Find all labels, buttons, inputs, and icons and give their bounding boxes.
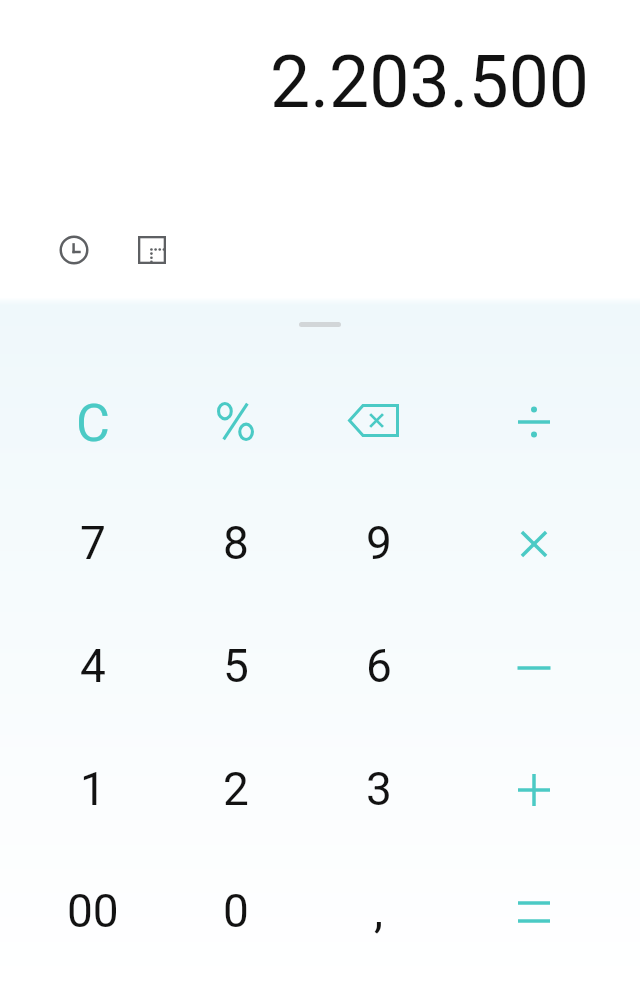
button[interactable]: Decimal separator <box>307 849 450 972</box>
button[interactable]: 2 <box>164 727 307 850</box>
button[interactable]: 7 <box>21 481 164 604</box>
staticText: 7 <box>80 516 106 570</box>
button[interactable]: Backspace <box>307 359 450 482</box>
staticText: 8 <box>223 516 249 570</box>
staticText: 4 <box>80 639 106 693</box>
button[interactable]: 1 <box>21 727 164 850</box>
button[interactable]: Percent <box>164 359 307 482</box>
button[interactable]: Clear <box>21 359 164 482</box>
button[interactable]: 8 <box>164 481 307 604</box>
button[interactable]: Equals <box>450 849 621 972</box>
staticText: , <box>374 884 384 938</box>
button[interactable]: 3 <box>307 727 450 850</box>
button[interactable]: Subtract <box>450 604 621 727</box>
staticText: 6 <box>366 639 392 693</box>
staticText: C <box>76 393 110 454</box>
button[interactable]: History <box>46 222 102 278</box>
button[interactable]: 5 <box>164 604 307 727</box>
staticText: 9 <box>366 516 392 570</box>
button[interactable]: Keypad layout <box>124 222 180 278</box>
staticText: 1 <box>80 762 106 816</box>
staticText: 3 <box>366 762 392 816</box>
button[interactable]: 4 <box>21 604 164 727</box>
button[interactable]: Add <box>450 727 621 850</box>
staticText: 2 <box>223 762 249 816</box>
button[interactable]: 9 <box>307 481 450 604</box>
staticText: 2.203.500 <box>270 41 589 125</box>
button[interactable]: Multiply <box>450 481 621 604</box>
staticText: 00 <box>67 884 119 938</box>
button[interactable]: 0 <box>164 849 307 972</box>
staticText: 0 <box>223 884 249 938</box>
staticText: 5 <box>223 639 249 693</box>
button[interactable]: Divide <box>450 359 621 482</box>
button[interactable]: 6 <box>307 604 450 727</box>
button[interactable]: 00 <box>21 849 164 972</box>
